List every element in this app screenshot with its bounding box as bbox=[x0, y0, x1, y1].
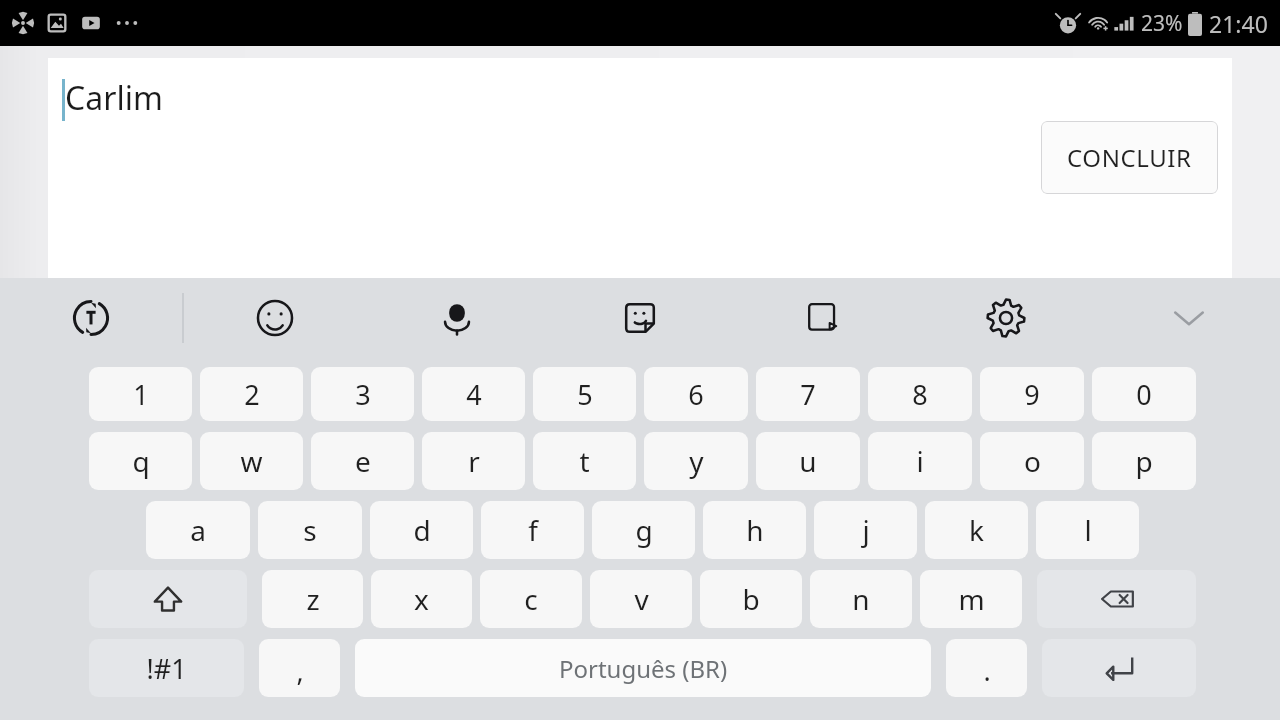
button[interactable]: GIF bbox=[731, 278, 914, 358]
staticText: j bbox=[862, 511, 870, 549]
button[interactable]: Voice input bbox=[366, 278, 548, 358]
button[interactable]: Português (BR) bbox=[355, 639, 931, 697]
button[interactable]: b bbox=[700, 570, 802, 628]
staticText: a bbox=[190, 511, 206, 549]
staticText: l bbox=[1084, 511, 1092, 549]
staticText: e bbox=[355, 442, 371, 480]
button[interactable]: . bbox=[946, 639, 1027, 697]
button[interactable]: Shift bbox=[89, 570, 247, 628]
staticText: u bbox=[799, 442, 817, 480]
staticText: g bbox=[635, 511, 653, 549]
button[interactable]: Stickers bbox=[548, 278, 731, 358]
staticText: s bbox=[303, 511, 317, 549]
staticText: 23% bbox=[1141, 9, 1183, 38]
button[interactable]: CONCLUIR bbox=[1041, 121, 1218, 194]
staticText: f bbox=[528, 511, 538, 549]
button[interactable]: Enter bbox=[1042, 639, 1196, 697]
staticText: 1 bbox=[133, 376, 149, 413]
staticText: r bbox=[468, 442, 480, 480]
button[interactable]: k bbox=[925, 501, 1028, 559]
staticText: m bbox=[958, 580, 985, 618]
staticText: k bbox=[969, 511, 984, 549]
staticText: 5 bbox=[577, 376, 593, 413]
staticText: w bbox=[240, 442, 263, 480]
button[interactable]: o bbox=[980, 432, 1084, 490]
staticText: h bbox=[746, 511, 764, 549]
button[interactable]: r bbox=[422, 432, 525, 490]
staticText: n bbox=[852, 580, 870, 618]
button[interactable]: x bbox=[371, 570, 472, 628]
staticText: z bbox=[306, 580, 320, 618]
button[interactable]: n bbox=[810, 570, 912, 628]
staticText: !#1 bbox=[146, 650, 187, 687]
button[interactable]: f bbox=[481, 501, 584, 559]
button[interactable]: Translate bbox=[0, 278, 182, 358]
button[interactable]: d bbox=[370, 501, 473, 559]
button[interactable]: s bbox=[258, 501, 362, 559]
button[interactable]: !#1 bbox=[89, 639, 244, 697]
button[interactable]: j bbox=[814, 501, 917, 559]
staticText: x bbox=[414, 580, 429, 618]
staticText: 9 bbox=[1024, 376, 1040, 413]
staticText: 7 bbox=[800, 376, 816, 413]
staticText: Carlim bbox=[65, 76, 163, 120]
button[interactable]: 0 bbox=[1092, 367, 1196, 421]
staticText: v bbox=[634, 580, 649, 618]
staticText: t bbox=[579, 442, 590, 480]
button[interactable]: 1 bbox=[89, 367, 192, 421]
staticText: 21:40 bbox=[1209, 8, 1268, 39]
staticText: d bbox=[413, 511, 431, 549]
staticText: . bbox=[983, 652, 991, 689]
button[interactable]: p bbox=[1092, 432, 1196, 490]
button[interactable]: Settings bbox=[914, 278, 1097, 358]
staticText: 8 bbox=[912, 376, 928, 413]
staticText: y bbox=[689, 442, 704, 480]
button[interactable]: i bbox=[868, 432, 972, 490]
button[interactable]: e bbox=[311, 432, 414, 490]
button[interactable]: 7 bbox=[756, 367, 860, 421]
button[interactable]: c bbox=[480, 570, 582, 628]
button[interactable]: q bbox=[89, 432, 192, 490]
staticText: 2 bbox=[244, 376, 260, 413]
button[interactable]: z bbox=[262, 570, 363, 628]
button[interactable]: 3 bbox=[311, 367, 414, 421]
button[interactable]: 5 bbox=[533, 367, 636, 421]
button[interactable]: m bbox=[920, 570, 1022, 628]
staticText: i bbox=[916, 442, 924, 480]
staticText: c bbox=[524, 580, 538, 618]
button[interactable]: w bbox=[200, 432, 303, 490]
button[interactable]: , bbox=[259, 639, 340, 697]
button[interactable]: Hide keyboard bbox=[1097, 278, 1280, 358]
button[interactable]: l bbox=[1036, 501, 1139, 559]
button[interactable]: Emoji bbox=[184, 278, 366, 358]
staticText: 6 bbox=[688, 376, 704, 413]
button[interactable]: a bbox=[146, 501, 250, 559]
staticText: 4 bbox=[466, 376, 482, 413]
button[interactable]: 8 bbox=[868, 367, 972, 421]
staticText: b bbox=[742, 580, 760, 618]
button[interactable]: v bbox=[590, 570, 692, 628]
staticText: CONCLUIR bbox=[1067, 141, 1192, 174]
staticText: o bbox=[1024, 442, 1041, 480]
button[interactable]: 4 bbox=[422, 367, 525, 421]
button[interactable]: t bbox=[533, 432, 636, 490]
button[interactable]: 2 bbox=[200, 367, 303, 421]
button[interactable]: y bbox=[644, 432, 748, 490]
staticText: q bbox=[132, 442, 150, 480]
staticText: p bbox=[1135, 442, 1153, 480]
button[interactable]: h bbox=[703, 501, 806, 559]
button[interactable]: u bbox=[756, 432, 860, 490]
staticText: , bbox=[296, 652, 304, 689]
button[interactable]: 6 bbox=[644, 367, 748, 421]
staticText: Português (BR) bbox=[559, 652, 728, 685]
staticText: 3 bbox=[355, 376, 371, 413]
staticText: 0 bbox=[1136, 376, 1152, 413]
button[interactable]: 9 bbox=[980, 367, 1084, 421]
button[interactable]: Backspace bbox=[1037, 570, 1196, 628]
button[interactable]: g bbox=[592, 501, 695, 559]
